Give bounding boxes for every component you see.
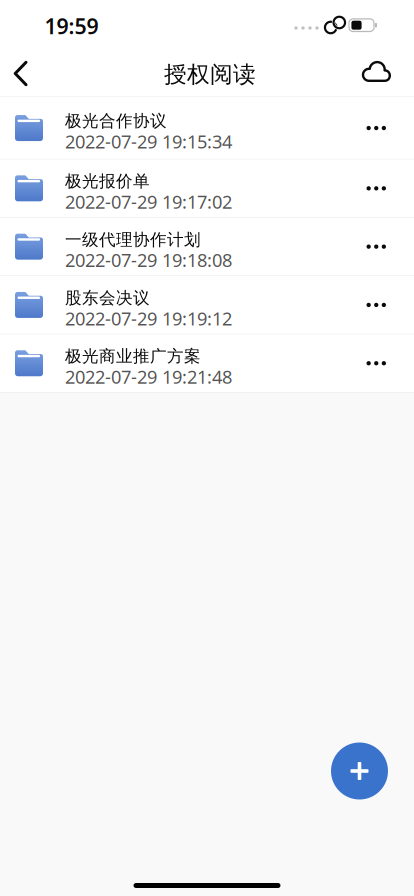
button[interactable]: 极光合作协议 (0, 97, 414, 159)
staticText: 2022-07-29 19:15:34 (65, 129, 232, 154)
staticText: 2022-07-29 19:21:48 (65, 364, 232, 389)
staticText: 2022-07-29 19:17:02 (65, 189, 232, 214)
staticText: 2022-07-29 19:18:08 (65, 248, 232, 272)
button[interactable]: Cloud (362, 44, 414, 96)
staticText: 股东会决议 (65, 287, 150, 308)
staticText: 一级代理协作计划 (65, 229, 201, 250)
staticText: 授权阅读 (164, 61, 256, 88)
button[interactable]: 一级代理协作计划 (0, 218, 414, 275)
staticText: 19:59 (44, 12, 98, 40)
button[interactable]: More (366, 186, 414, 190)
button[interactable]: More (366, 361, 414, 365)
staticText: 2022-07-29 19:19:12 (65, 306, 232, 331)
button[interactable]: Back (0, 44, 44, 96)
button[interactable]: Add (331, 742, 388, 799)
button[interactable]: More (366, 126, 414, 130)
button[interactable]: 极光报价单 (0, 160, 414, 217)
button[interactable]: 股东会决议 (0, 276, 414, 334)
staticText: 极光商业推广方案 (65, 346, 201, 367)
button[interactable]: More (366, 244, 414, 249)
button[interactable]: More (366, 303, 414, 307)
button[interactable]: 极光商业推广方案 (0, 334, 414, 392)
staticText: 极光报价单 (65, 171, 150, 192)
staticText: 极光合作协议 (65, 111, 167, 131)
